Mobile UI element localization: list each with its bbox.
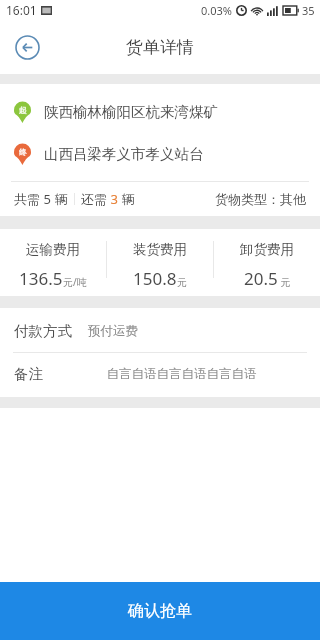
staticText: 备注 bbox=[14, 365, 43, 383]
staticText: 20.5 bbox=[244, 267, 278, 290]
button[interactable]: 确认抢单 bbox=[0, 582, 320, 640]
staticText: 还需 bbox=[81, 191, 107, 207]
button[interactable]: 终 bbox=[0, 133, 320, 175]
staticText: 卸货费用 bbox=[240, 241, 294, 258]
staticText: 150.8 bbox=[133, 267, 177, 290]
staticText: 陕西榆林榆阳区杭来湾煤矿 bbox=[44, 103, 218, 121]
button[interactable]: Back bbox=[10, 30, 44, 64]
staticText: 35 bbox=[302, 3, 315, 18]
staticText: 元 bbox=[278, 275, 291, 289]
staticText: 终 bbox=[19, 147, 27, 157]
button[interactable]: 起 bbox=[0, 91, 320, 133]
staticText: 运输费用 bbox=[26, 241, 80, 258]
staticText: 装货费用 bbox=[133, 241, 187, 258]
staticText: 辆 bbox=[55, 191, 68, 207]
staticText: 16:01 bbox=[6, 2, 37, 18]
staticText: 预付运费 bbox=[88, 323, 306, 339]
staticText: 共需 bbox=[14, 191, 40, 207]
staticText: 货单详情 bbox=[126, 37, 194, 58]
staticText: 0.03% bbox=[201, 3, 232, 18]
staticText: 元 bbox=[177, 276, 187, 289]
staticText: 自言自语自言自语自言自语 bbox=[57, 366, 306, 382]
staticText: 元/吨 bbox=[63, 275, 87, 289]
staticText: 5 bbox=[40, 190, 55, 208]
staticText: 3 bbox=[107, 190, 122, 208]
staticText: 货物类型：其他 bbox=[215, 191, 306, 207]
staticText: 确认抢单 bbox=[128, 601, 192, 621]
staticText: 山西吕梁孝义市孝义站台 bbox=[44, 145, 204, 163]
staticText: 付款方式 bbox=[14, 322, 72, 340]
staticText: 辆 bbox=[122, 191, 135, 207]
staticText: 136.5 bbox=[19, 267, 63, 290]
staticText: 起 bbox=[19, 105, 27, 115]
